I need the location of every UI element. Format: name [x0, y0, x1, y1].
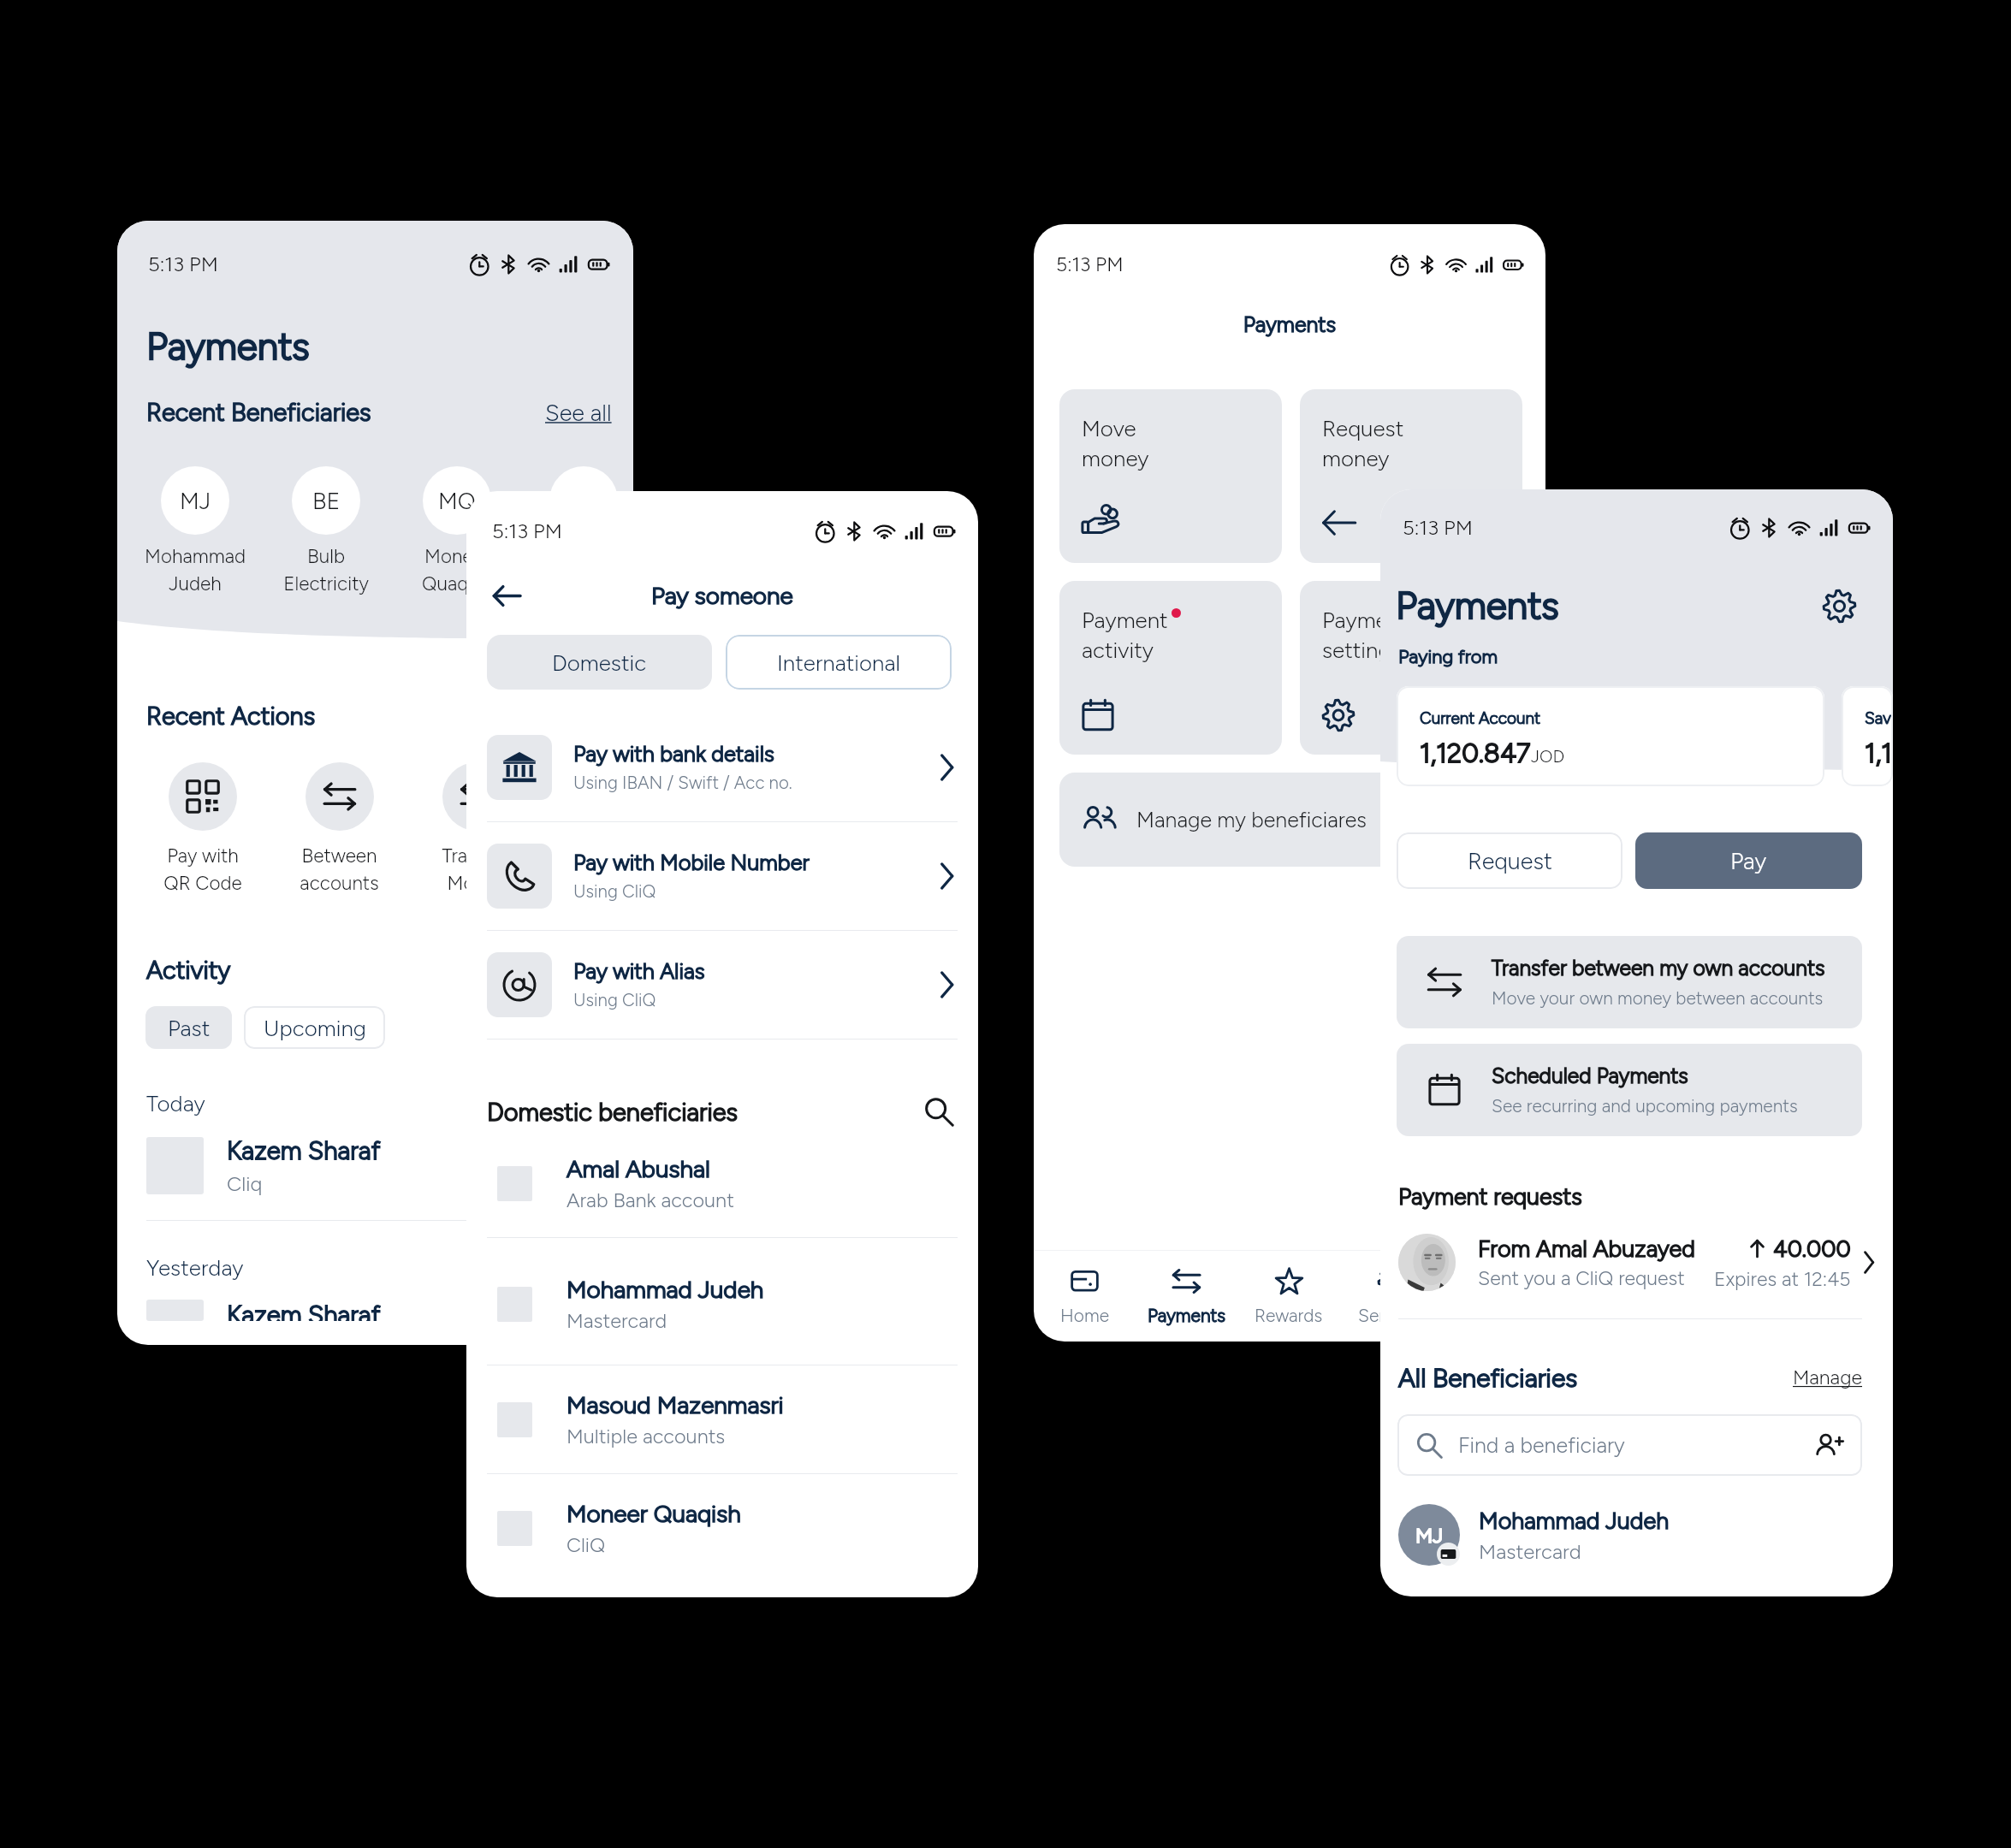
button[interactable]: Manage my beneficiares — [1059, 773, 1522, 867]
staticText: Pay with bank details — [573, 741, 774, 767]
staticText: From Amal Abuzayed — [1478, 1235, 1695, 1262]
staticText: Pay with Alias — [573, 958, 705, 985]
button[interactable]: Scheduled Payments — [1397, 1044, 1862, 1136]
button[interactable]: Request — [1397, 832, 1622, 889]
button[interactable]: MJ — [1380, 1504, 1893, 1566]
button[interactable]: AA — [534, 466, 633, 595]
staticText: Find a beneficiary — [1458, 1432, 1625, 1458]
button[interactable]: See all — [545, 399, 612, 426]
button[interactable]: Move money — [1059, 389, 1282, 563]
button[interactable]: Current Account — [1397, 686, 1824, 786]
staticText: Domestic beneficiaries — [487, 1097, 739, 1127]
button[interactable]: Sav — [1842, 686, 1893, 786]
staticText: Current Account — [1420, 708, 1541, 728]
staticText: MJ — [1415, 1523, 1444, 1548]
staticText: Using CliQ — [573, 881, 656, 903]
staticText: See recurring and upcoming payments — [1492, 1095, 1798, 1116]
staticText: Yesterday — [146, 1254, 244, 1281]
staticText: Moneer Quaqish — [567, 1499, 741, 1528]
staticText: Mohammad Judeh — [567, 1275, 764, 1304]
staticText: Pay someone — [651, 581, 793, 610]
staticText: Moneer Quaqish — [567, 1499, 741, 1528]
button[interactable]: Pay with bank details — [466, 714, 978, 821]
button[interactable]: Kazem Sharaf — [117, 1135, 633, 1220]
staticText: Moneer Quaqish — [422, 545, 492, 595]
staticText: Recent Beneficiaries — [146, 397, 371, 427]
staticText: Using CliQ — [573, 990, 656, 1011]
staticText: Scheduled Payments — [1492, 1063, 1688, 1089]
button[interactable]: Manage — [1793, 1365, 1863, 1389]
button[interactable]: Payments — [1136, 1251, 1237, 1342]
staticText: Payment requests — [1398, 1182, 1582, 1210]
button[interactable]: International — [726, 635, 952, 690]
button[interactable]: Moneer Quaqish — [466, 1474, 978, 1582]
staticText: Pay with Alias — [573, 958, 705, 985]
staticText: Payments — [1034, 311, 1545, 337]
button[interactable]: Back — [487, 576, 526, 615]
staticText: Mohammad Judeh — [145, 545, 246, 595]
button[interactable]: BE — [272, 466, 379, 595]
staticText: Domestic beneficiaries — [487, 1097, 739, 1127]
button[interactable]: Amal Abushal — [466, 1129, 978, 1237]
button[interactable]: Masoud Mazenmasri — [466, 1365, 978, 1473]
button[interactable]: Payment activity — [1059, 581, 1282, 755]
staticText: MJ — [1415, 1523, 1444, 1548]
staticText: MJ — [180, 487, 211, 514]
button[interactable]: Upcoming — [244, 1006, 385, 1049]
button[interactable]: Transfer Money — [422, 762, 531, 894]
staticText: Past — [168, 1015, 211, 1041]
button[interactable]: More — [1443, 1251, 1545, 1342]
staticText: Expires at 12:45 — [1714, 1267, 1851, 1291]
staticText: Payments — [1034, 311, 1545, 337]
staticText: 1,1 — [1865, 737, 1893, 769]
staticText: Payment settings — [1322, 607, 1409, 664]
button[interactable]: Pay with QR Code — [148, 762, 257, 894]
button[interactable]: Request money — [1300, 389, 1522, 563]
button[interactable]: Settings — [1820, 587, 1858, 625]
button[interactable]: Home — [1034, 1251, 1136, 1342]
staticText: Activity — [146, 955, 231, 985]
button[interactable]: Past — [145, 1006, 232, 1049]
staticText: Upcoming — [264, 1015, 366, 1041]
staticText: Move your own money between accounts — [1492, 987, 1824, 1009]
staticText: 1,120.847 — [1420, 737, 1531, 769]
staticText: International — [777, 649, 900, 676]
staticText: Transfer between my own accounts — [1492, 956, 1825, 981]
staticText: Amal Abushal — [567, 1154, 710, 1183]
button[interactable]: Payment settings — [1300, 581, 1522, 755]
staticText: 5:13 PM — [492, 518, 562, 543]
staticText: Domestic — [552, 649, 647, 676]
button[interactable]: MJ — [141, 466, 248, 595]
button[interactable]: Domestic — [487, 635, 712, 690]
staticText: Recent Actions — [146, 701, 316, 731]
staticText: Paying from — [1398, 645, 1498, 667]
staticText: 1,1 — [1865, 737, 1893, 769]
button[interactable]: Find a beneficiary — [1397, 1414, 1862, 1476]
button[interactable]: Mohammad Judeh — [466, 1238, 978, 1365]
staticText: Between accounts — [300, 844, 379, 894]
staticText: Request money — [1322, 415, 1404, 472]
staticText: Pay with QR Code — [163, 844, 242, 894]
button[interactable]: Pay with Mobile Number — [466, 822, 978, 930]
button[interactable]: Transfer between my own accounts — [1397, 936, 1862, 1028]
staticText: 40.000 — [1773, 1235, 1851, 1262]
staticText: Move money — [1082, 415, 1149, 472]
staticText: Payments — [1148, 1305, 1226, 1326]
staticText: More — [1474, 1305, 1515, 1326]
button[interactable]: Rewards — [1237, 1251, 1340, 1342]
staticText: From Amal Abuzayed — [1478, 1235, 1695, 1262]
staticText: Sav — [1865, 708, 1891, 728]
button[interactable]: Pay — [1635, 832, 1862, 889]
button[interactable]: Pay with Alias — [466, 931, 978, 1039]
button[interactable]: Services — [1340, 1251, 1443, 1342]
button[interactable]: Search — [922, 1094, 956, 1128]
staticText: Amal Abushal — [567, 1154, 710, 1183]
staticText: Payments — [146, 323, 310, 369]
staticText: Manage my beneficiares — [1136, 807, 1367, 832]
button[interactable]: Between accounts — [285, 762, 394, 894]
button[interactable]: From Amal Abuzayed — [1380, 1234, 1893, 1291]
button[interactable]: Kazem Sharaf — [117, 1300, 633, 1345]
staticText: Multiple accounts — [567, 1424, 726, 1448]
button[interactable]: MQ — [403, 466, 510, 595]
